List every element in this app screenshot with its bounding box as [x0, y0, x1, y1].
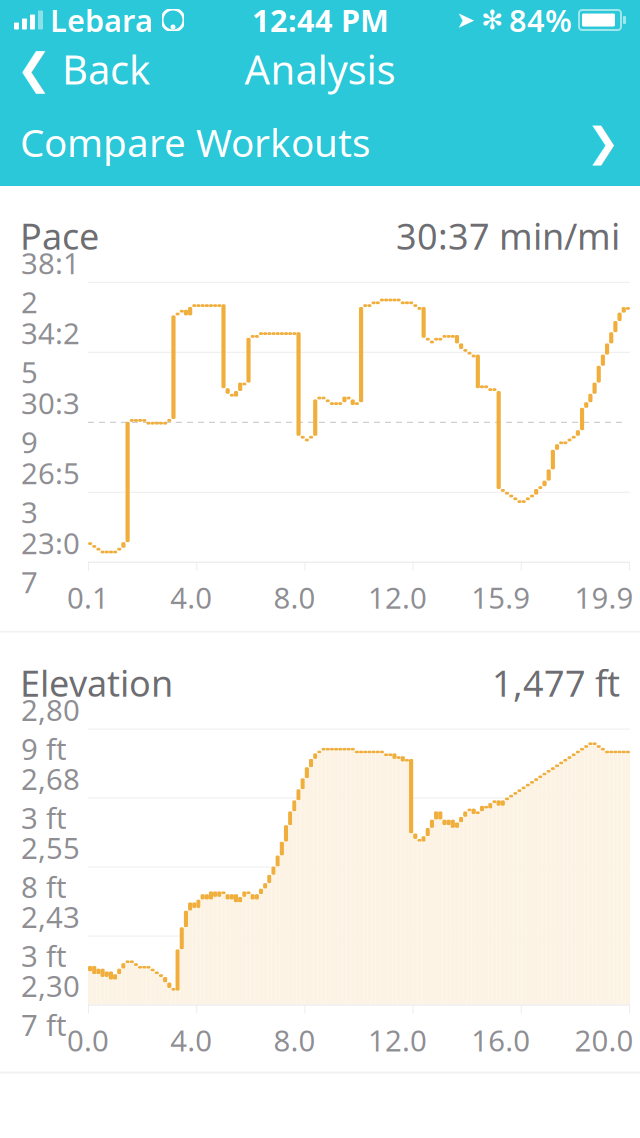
staticText: 26:53 — [21, 453, 80, 531]
staticText: 12:44 PM — [252, 0, 389, 40]
staticText: 34:25 — [21, 313, 80, 391]
staticText: Analysis — [244, 42, 395, 95]
staticText: 19.9 — [574, 578, 633, 617]
staticText: 2,558 ft — [21, 828, 80, 906]
staticText: 4.0 — [170, 1021, 212, 1060]
staticText: ➤ — [456, 7, 475, 33]
staticText: 38:12 — [21, 243, 80, 321]
staticText: 1,477 ft — [492, 659, 620, 707]
staticText: 23:07 — [21, 523, 80, 601]
staticText: 84% — [509, 0, 572, 40]
staticText: 8.0 — [273, 1021, 315, 1060]
staticText: Elevation — [20, 659, 173, 707]
staticText: 0.1 — [67, 578, 109, 617]
staticText: 2,307 ft — [21, 966, 80, 1044]
staticText: ✻ — [481, 5, 503, 35]
staticText: Pace — [20, 212, 99, 260]
staticText: 2,809 ft — [21, 690, 80, 768]
button[interactable]: Compare Workouts — [0, 98, 640, 186]
staticText: 30:37 min/mi — [396, 212, 620, 260]
staticText: 12.0 — [368, 1021, 427, 1060]
staticText: Back — [62, 42, 150, 95]
staticText: 0.0 — [67, 1021, 109, 1060]
staticText: 20.0 — [574, 1021, 633, 1060]
staticText: 30:39 — [21, 383, 80, 461]
staticText: 2,433 ft — [21, 897, 80, 975]
staticText: 4.0 — [170, 578, 212, 617]
staticText: 12.0 — [368, 578, 427, 617]
staticText: 16.0 — [471, 1021, 530, 1060]
staticText: Lebara — [50, 0, 153, 40]
staticText: 8.0 — [273, 578, 315, 617]
staticText: 15.9 — [471, 578, 530, 617]
staticText: 2,683 ft — [21, 759, 80, 837]
staticText: ❮ — [16, 45, 52, 93]
staticText: Compare Workouts — [20, 116, 371, 168]
button[interactable]: ❮ — [0, 34, 150, 103]
staticText: ❯ — [586, 119, 620, 165]
